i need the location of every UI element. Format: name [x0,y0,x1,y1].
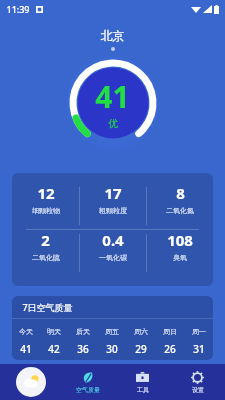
staticText: 优 [108,117,118,130]
staticText: 41 [20,342,32,356]
staticText: 二氧化硫 [32,253,60,262]
button[interactable]: Weather [16,367,46,397]
staticText: 29 [135,342,147,356]
staticText: 空气质量 [76,386,100,394]
button[interactable]: 工具 [115,364,170,400]
staticText: 周六 [134,327,148,336]
staticText: 臭氧 [173,253,187,262]
staticText: 明天 [47,327,61,336]
staticText: 7日空气质量 [22,301,73,313]
staticText: 设置 [192,386,204,394]
staticText: 17 [104,183,122,203]
staticText: 12 [37,183,55,203]
staticText: 30 [106,342,118,356]
staticText: 二氧化氮 [166,206,194,215]
button[interactable]: 7日空气质量 [12,296,213,360]
staticText: 今天 [19,327,33,336]
staticText: 工具 [137,386,149,394]
staticText: 细颗粒物 [32,206,60,215]
staticText: 36 [77,342,89,356]
staticText: 粗颗粒度 [99,206,127,215]
staticText: 后天 [76,327,90,336]
staticText: 周一 [192,327,206,336]
staticText: 北京 [0,28,225,43]
staticText: 41 [95,76,130,117]
staticText: 31 [193,342,205,356]
button[interactable]: 12 [12,173,213,286]
staticText: 2 [41,230,50,250]
staticText: 一氧化碳 [99,253,127,262]
staticText: 8 [176,183,185,203]
staticText: 0.4 [102,230,124,250]
staticText: 42 [48,342,60,356]
staticText: 108 [167,230,193,250]
staticText: 周日 [163,327,177,336]
button[interactable]: 空气质量 [60,364,115,400]
button[interactable]: 设置 [170,364,225,400]
staticText: 11:39 [6,3,30,15]
staticText: 周五 [105,327,119,336]
staticText: 26 [164,342,176,356]
